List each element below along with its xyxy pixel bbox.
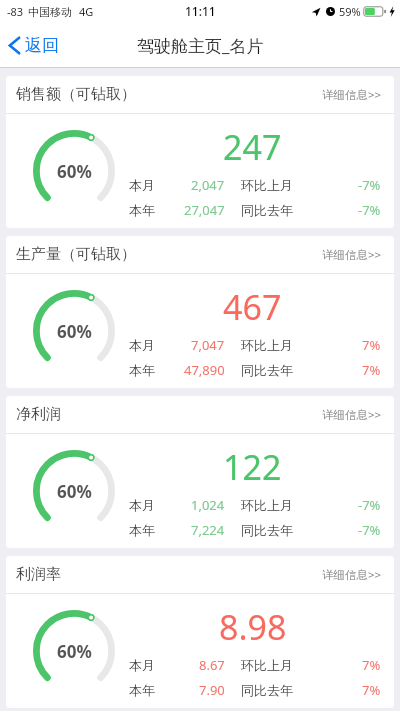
button[interactable]: 利润率	[6, 556, 394, 708]
staticText: -7%	[358, 201, 381, 219]
staticText: 同比去年	[241, 202, 293, 218]
staticText: 8.67	[199, 656, 225, 674]
staticText: 环比上月	[241, 657, 293, 673]
staticText: 同比去年	[241, 362, 293, 378]
staticText: 同比去年	[241, 522, 293, 538]
button[interactable]: 详细信息>>	[320, 83, 384, 107]
button[interactable]: 生产量（可钻取）	[6, 236, 394, 388]
staticText: -7%	[358, 176, 381, 194]
staticText: 环比上月	[241, 177, 293, 193]
staticText: 生产量（可钻取）	[16, 245, 136, 264]
staticText: 7%	[362, 656, 381, 674]
staticText: 本月	[129, 657, 155, 673]
staticText: 1,024	[191, 496, 225, 514]
staticText: 7%	[362, 681, 381, 699]
staticText: 详细信息>>	[322, 87, 382, 103]
staticText: 7.90	[199, 681, 225, 699]
staticText: 驾驶舱主页_名片	[137, 34, 264, 57]
staticText: 467	[223, 284, 282, 330]
button[interactable]: 净利润	[6, 396, 394, 548]
staticText: 返回	[25, 35, 59, 56]
staticText: 247	[223, 124, 282, 170]
staticText: 中国移动	[28, 5, 72, 19]
staticText: 同比去年	[241, 682, 293, 698]
staticText: 净利润	[16, 405, 61, 424]
staticText: 利润率	[16, 565, 61, 584]
staticText: 详细信息>>	[322, 407, 382, 423]
button[interactable]: 返回	[0, 29, 69, 62]
staticText: 7%	[362, 336, 381, 354]
staticText: 60%	[57, 480, 92, 503]
staticText: 详细信息>>	[322, 567, 382, 583]
staticText: 60%	[57, 160, 92, 183]
staticText: 详细信息>>	[322, 247, 382, 263]
staticText: -7%	[358, 496, 381, 514]
staticText: 60%	[57, 640, 92, 663]
staticText: 11:11	[185, 3, 216, 19]
staticText: 本月	[129, 177, 155, 193]
staticText: 本年	[129, 522, 155, 538]
button[interactable]: 详细信息>>	[320, 243, 384, 267]
staticText: 8.98	[219, 604, 287, 650]
staticText: 销售额（可钻取）	[16, 85, 136, 104]
staticText: 4G	[79, 4, 94, 19]
staticText: 本月	[129, 497, 155, 513]
staticText: -83	[7, 4, 24, 19]
staticText: 27,047	[184, 201, 225, 219]
staticText: 本月	[129, 337, 155, 353]
staticText: 59%	[339, 4, 361, 19]
staticText: 7,224	[191, 521, 225, 539]
staticText: 122	[223, 444, 282, 490]
staticText: -7%	[358, 521, 381, 539]
button[interactable]: 详细信息>>	[320, 563, 384, 587]
staticText: 环比上月	[241, 337, 293, 353]
staticText: 2,047	[191, 176, 225, 194]
staticText: 环比上月	[241, 497, 293, 513]
staticText: 60%	[57, 320, 92, 343]
staticText: 本年	[129, 682, 155, 698]
staticText: 7%	[362, 361, 381, 379]
staticText: 本年	[129, 362, 155, 378]
button[interactable]: 销售额（可钻取）	[6, 76, 394, 228]
staticText: 47,890	[184, 361, 225, 379]
button[interactable]: 详细信息>>	[320, 403, 384, 427]
staticText: 7,047	[191, 336, 225, 354]
staticText: 本年	[129, 202, 155, 218]
